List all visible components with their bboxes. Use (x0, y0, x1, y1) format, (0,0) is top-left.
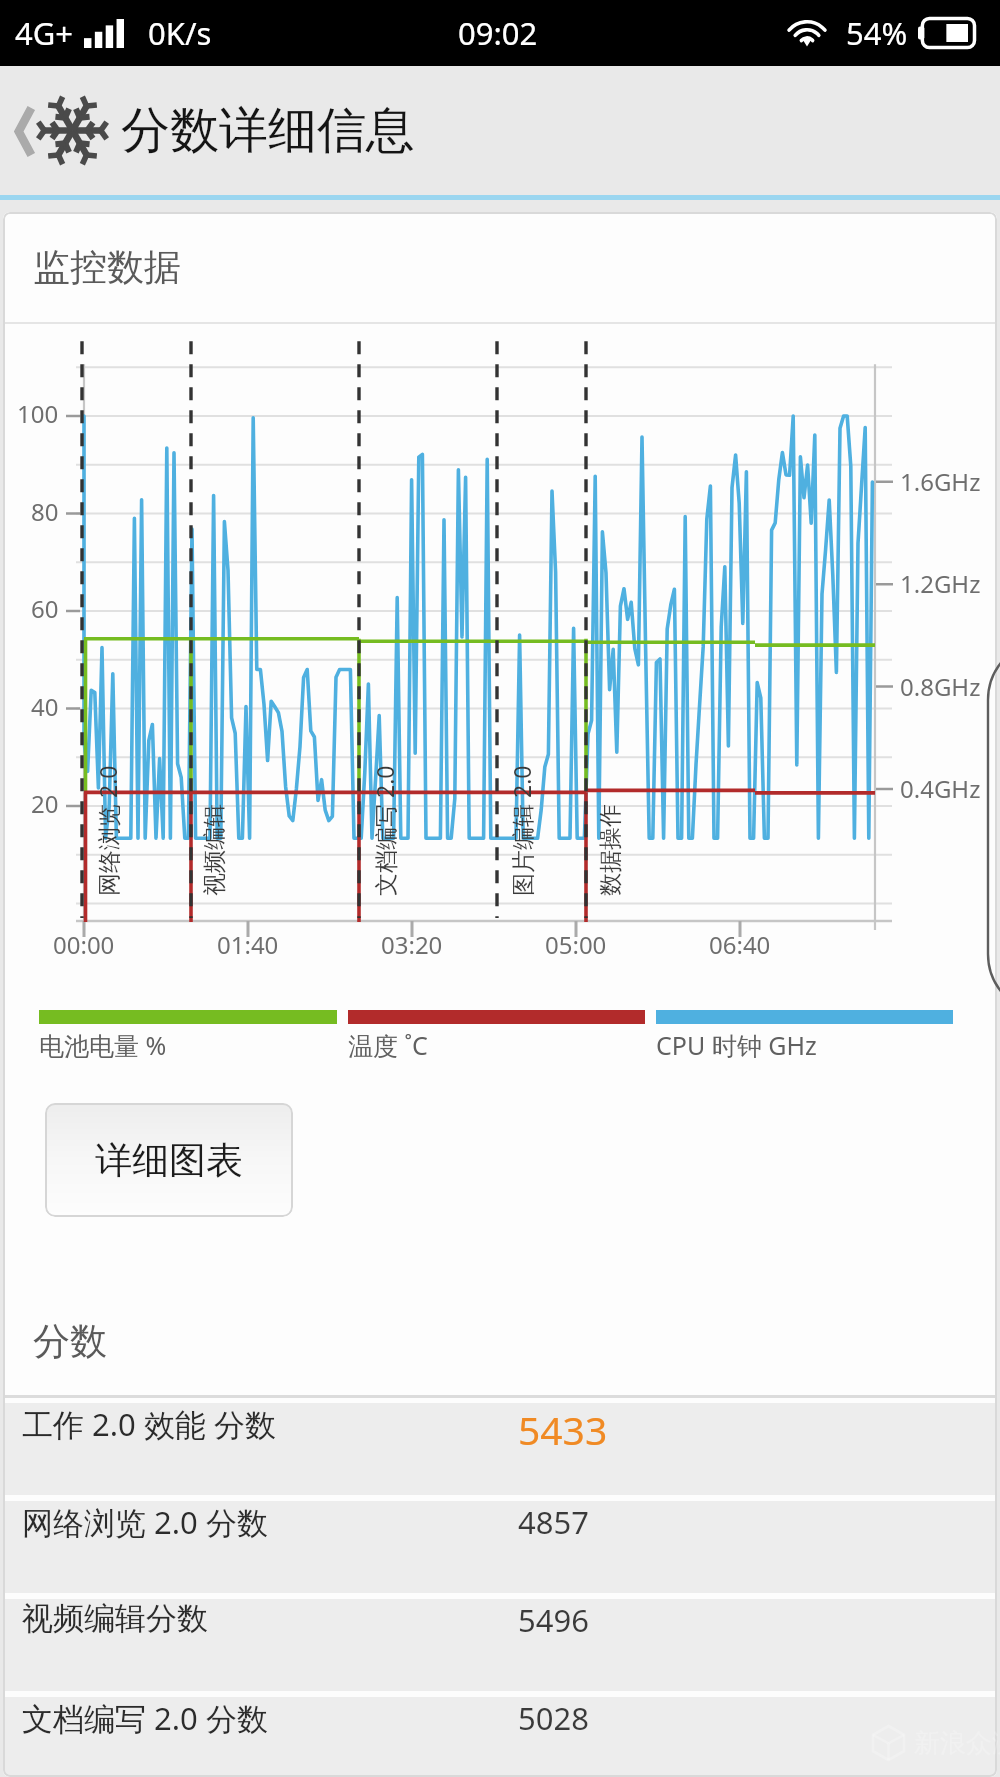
staticText: 54% (846, 12, 908, 54)
staticText: 新浪众测 (914, 1727, 1000, 1760)
staticText: 00:00 (53, 928, 115, 961)
staticText: 详细图表 (95, 1137, 243, 1184)
staticText: 06:40 (709, 928, 771, 961)
staticText: 数据操作 (596, 804, 625, 896)
staticText: 09:02 (458, 12, 538, 54)
staticText: 03:20 (381, 928, 443, 961)
staticText: 网络浏览 2.0 分数 (22, 1501, 268, 1543)
staticText: 文档编写 2.0 分数 (22, 1697, 268, 1739)
button[interactable]: Back (0, 66, 1000, 195)
staticText: 05:00 (545, 928, 607, 961)
staticText: 5433 (518, 1403, 608, 1456)
staticText: 100 (17, 397, 59, 430)
staticText: 分数 (33, 1318, 107, 1365)
button[interactable]: 工作 2.0 效能 分数 (3, 1403, 997, 1495)
staticText: 60 (31, 592, 59, 625)
staticText: 1.6GHz (900, 465, 981, 498)
staticText: 图片编辑 2.0 (506, 765, 537, 896)
staticText: 视频编辑分数 (22, 1599, 208, 1638)
button[interactable]: 详细图表 (45, 1103, 293, 1217)
staticText: 40 (31, 690, 59, 723)
staticText: 0K/s (148, 12, 212, 54)
button[interactable]: 文档编写 2.0 分数 (3, 1697, 997, 1777)
staticText: 80 (31, 495, 59, 528)
staticText: 0.4GHz (900, 772, 981, 805)
staticText: 1.2GHz (900, 567, 981, 600)
staticText: 工作 2.0 效能 分数 (22, 1403, 276, 1445)
staticText: 监控数据 (33, 244, 181, 291)
staticText: 01:40 (217, 928, 279, 961)
button[interactable]: 视频编辑分数 (3, 1599, 997, 1691)
staticText: 电池电量 % (39, 1028, 167, 1062)
button[interactable]: 网络浏览 2.0 分数 (3, 1501, 997, 1593)
staticText: 4857 (518, 1501, 589, 1543)
other: Back (14, 100, 35, 162)
staticText: CPU 时钟 GHz (656, 1028, 817, 1062)
staticText: 温度 ˚C (348, 1028, 428, 1062)
staticText: 4G+ (15, 12, 74, 54)
staticText: 5028 (518, 1697, 589, 1739)
staticText: 5496 (518, 1599, 589, 1641)
staticText: 视频编辑 (200, 804, 229, 896)
staticText: 网络浏览 2.0 (92, 765, 123, 896)
staticText: 0.8GHz (900, 670, 981, 703)
staticText: 20 (31, 787, 59, 820)
staticText: 文档编写 2.0 (369, 765, 400, 896)
staticText: 分数详细信息 (121, 100, 415, 162)
